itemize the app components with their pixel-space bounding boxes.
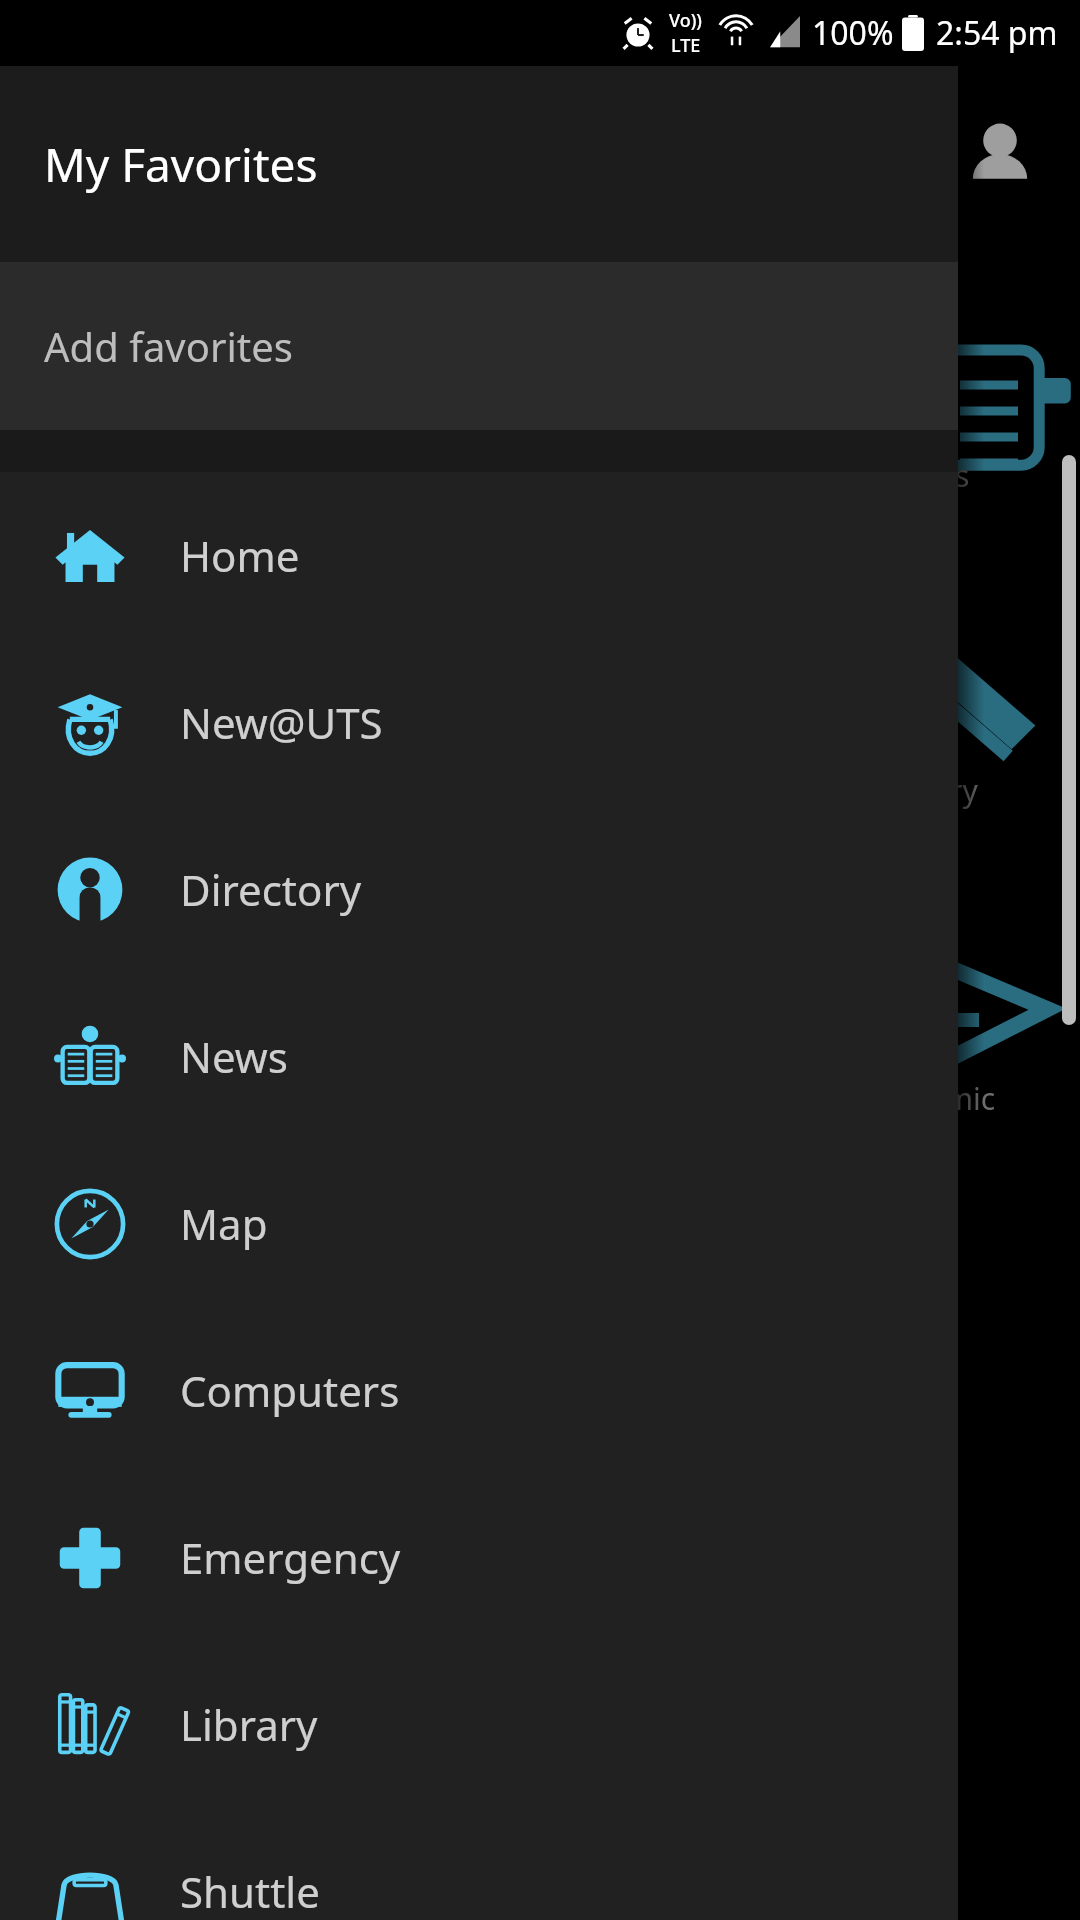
staticText: News: [180, 1028, 288, 1085]
button[interactable]: Computers: [0, 1307, 958, 1474]
staticText: ry: [950, 770, 978, 811]
button[interactable]: Map: [0, 1140, 958, 1307]
staticText: LTE: [671, 33, 701, 58]
staticText: Shuttle: [180, 1863, 320, 1920]
staticText: Computers: [180, 1362, 400, 1419]
staticText: My Favorites: [44, 133, 318, 196]
staticText: Home: [180, 527, 300, 584]
button[interactable]: Home: [0, 472, 958, 639]
staticText: Vo)): [669, 8, 702, 33]
staticText: New@UTS: [180, 694, 383, 751]
staticText: 100%: [812, 11, 894, 55]
staticText: Emergency: [180, 1529, 401, 1586]
staticText: Add favorites: [44, 319, 293, 373]
button[interactable]: Directory: [0, 806, 958, 973]
button[interactable]: New@UTS: [0, 639, 958, 806]
staticText: s: [955, 455, 970, 496]
button[interactable]: Emergency: [0, 1474, 958, 1641]
staticText: 2:54 pm: [936, 11, 1058, 55]
button[interactable]: Shuttle: [0, 1808, 958, 1920]
button[interactable]: News: [0, 973, 958, 1140]
staticText: Map: [180, 1195, 268, 1252]
staticText: Library: [180, 1696, 318, 1753]
staticText: mic: [945, 1078, 996, 1119]
staticText: Directory: [180, 861, 362, 918]
button[interactable]: Profile: [960, 110, 1040, 190]
button[interactable]: Library: [0, 1641, 958, 1808]
button[interactable]: Add favorites: [0, 262, 958, 430]
